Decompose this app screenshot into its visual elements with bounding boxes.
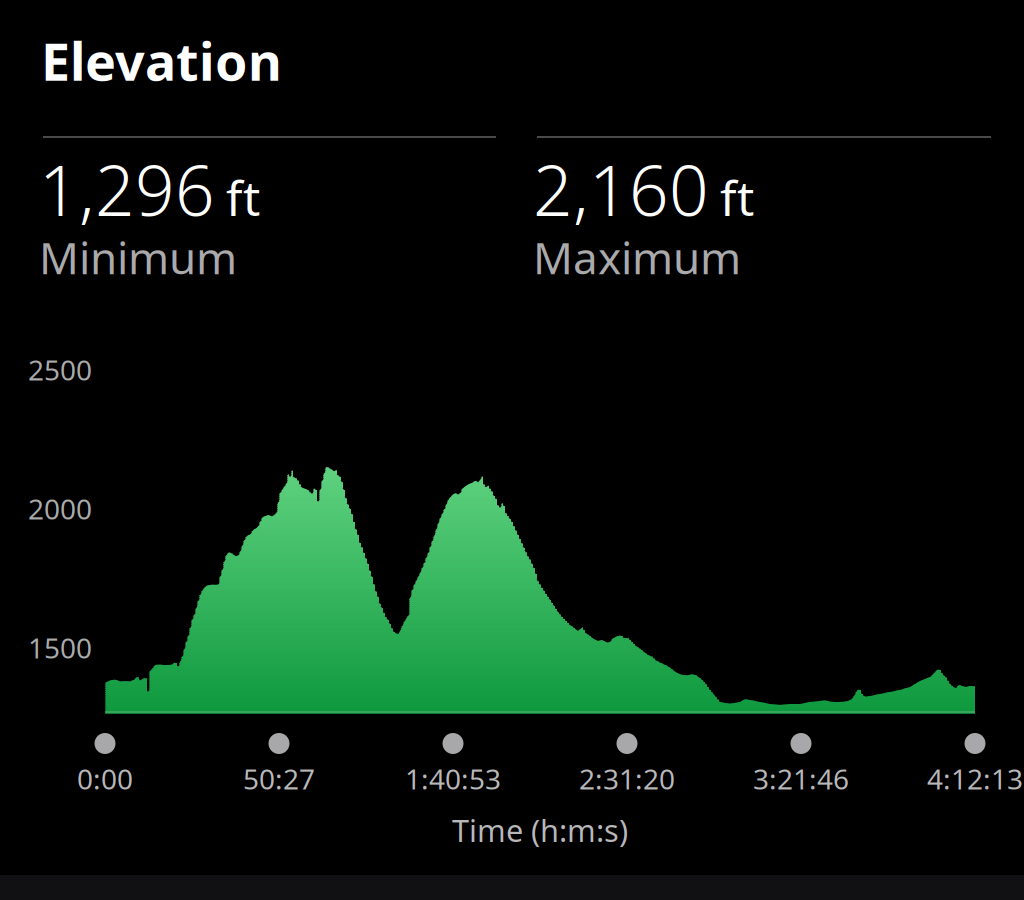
staticText: Maximum (533, 228, 741, 286)
staticText: 1500 (28, 629, 92, 666)
button[interactable]: Time 0:00 (0, 733, 215, 793)
button[interactable]: Time 4:12:13 (865, 733, 1024, 793)
button[interactable]: Time 2:31:20 (517, 733, 737, 793)
staticText: 50:27 (243, 760, 315, 797)
staticText: ft (226, 165, 260, 229)
staticText: 3:21:46 (753, 760, 849, 797)
button[interactable]: Time 1:40:53 (343, 733, 563, 793)
staticText: 1,296 (39, 143, 215, 235)
staticText: 2500 (28, 351, 92, 388)
staticText: ft (720, 165, 754, 229)
button[interactable]: 2,160 (533, 143, 983, 288)
staticText: 4:12:13 (927, 760, 1023, 797)
staticText: 2000 (28, 490, 92, 527)
staticText: Minimum (39, 228, 237, 286)
staticText: Elevation (41, 26, 282, 95)
button[interactable]: 1,296 (39, 143, 489, 288)
button[interactable]: Time 50:27 (169, 733, 389, 793)
staticText: 2:31:20 (579, 760, 675, 797)
staticText: 1:40:53 (405, 760, 501, 797)
staticText: 2,160 (533, 143, 709, 235)
staticText: 0:00 (77, 760, 133, 797)
staticText: Time (h:m:s) (452, 810, 628, 850)
button[interactable]: Time 3:21:46 (691, 733, 911, 793)
